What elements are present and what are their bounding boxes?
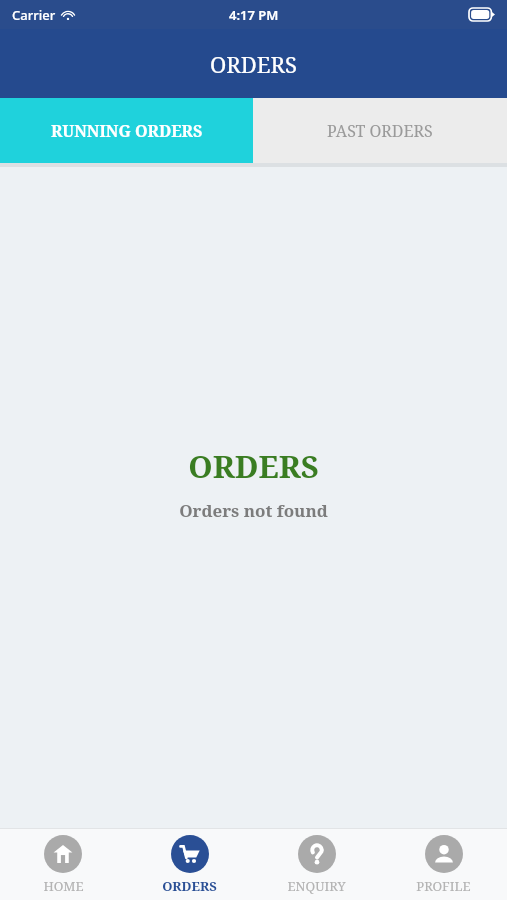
staticText: ORDERS xyxy=(188,445,319,487)
button[interactable]: HOME xyxy=(0,829,126,900)
staticText: 4:17 PM xyxy=(229,6,279,24)
button[interactable]: PROFILE xyxy=(380,829,507,900)
staticText: Orders not found xyxy=(179,499,328,522)
staticText: RUNNING ORDERS xyxy=(51,120,203,142)
button[interactable]: RUNNING ORDERS xyxy=(0,98,253,163)
staticText: ORDERS xyxy=(210,49,297,79)
staticText: PROFILE xyxy=(416,877,471,895)
staticText: ORDERS xyxy=(162,877,217,895)
button[interactable]: ORDERS xyxy=(126,829,253,900)
button[interactable]: ENQUIRY xyxy=(253,829,380,900)
button[interactable]: PAST ORDERS xyxy=(253,98,507,163)
staticText: ENQUIRY xyxy=(287,877,346,895)
staticText: HOME xyxy=(43,877,84,895)
staticText: Carrier xyxy=(12,6,56,24)
staticText: PAST ORDERS xyxy=(327,120,433,142)
